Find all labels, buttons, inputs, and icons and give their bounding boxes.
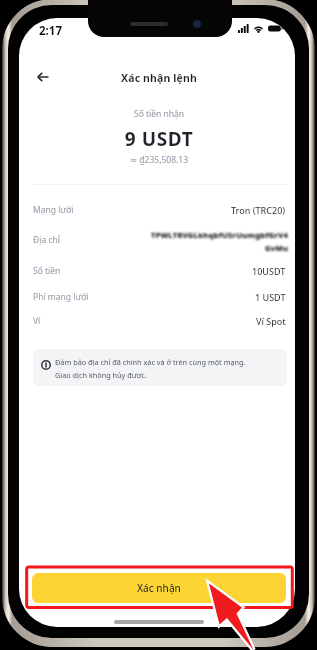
staticText: Tron (TRC20) — [231, 204, 286, 216]
staticText: Ví — [33, 315, 41, 327]
staticText: TPWLTRVGLkhqbfU5rUumgbfGrV4 — [151, 230, 289, 240]
staticText: Xác nhận — [137, 581, 181, 595]
staticText: ≈ ₫235,508.13 — [21, 154, 295, 166]
button[interactable]: Xác nhận — [32, 573, 286, 603]
staticText: GvMu — [265, 243, 289, 253]
staticText: Phí mạng lưới — [33, 291, 89, 303]
staticText: Giao dịch không hủy được. — [55, 370, 147, 380]
staticText: Xác nhận lệnh — [21, 71, 295, 85]
staticText: Ví Spot — [256, 315, 286, 327]
staticText: 9 USDT — [21, 126, 295, 152]
staticText: 10USDT — [252, 265, 286, 277]
staticText: Mạng lưới — [33, 204, 74, 216]
staticText: GvMu — [265, 243, 289, 253]
staticText: TPWLTRVGLkhqbfU5rUumgbfGrV4 — [151, 230, 289, 240]
staticText: 1 USDT — [255, 291, 286, 303]
staticText: Địa chỉ — [33, 234, 60, 246]
staticText: Đảm bảo địa chỉ đã chính xác và ở trên c… — [55, 357, 246, 367]
button[interactable]: Back — [28, 62, 58, 92]
staticText: 2:17 — [39, 23, 62, 39]
staticText: Số tiền — [33, 265, 61, 277]
staticText: Số tiền nhận — [21, 108, 295, 120]
